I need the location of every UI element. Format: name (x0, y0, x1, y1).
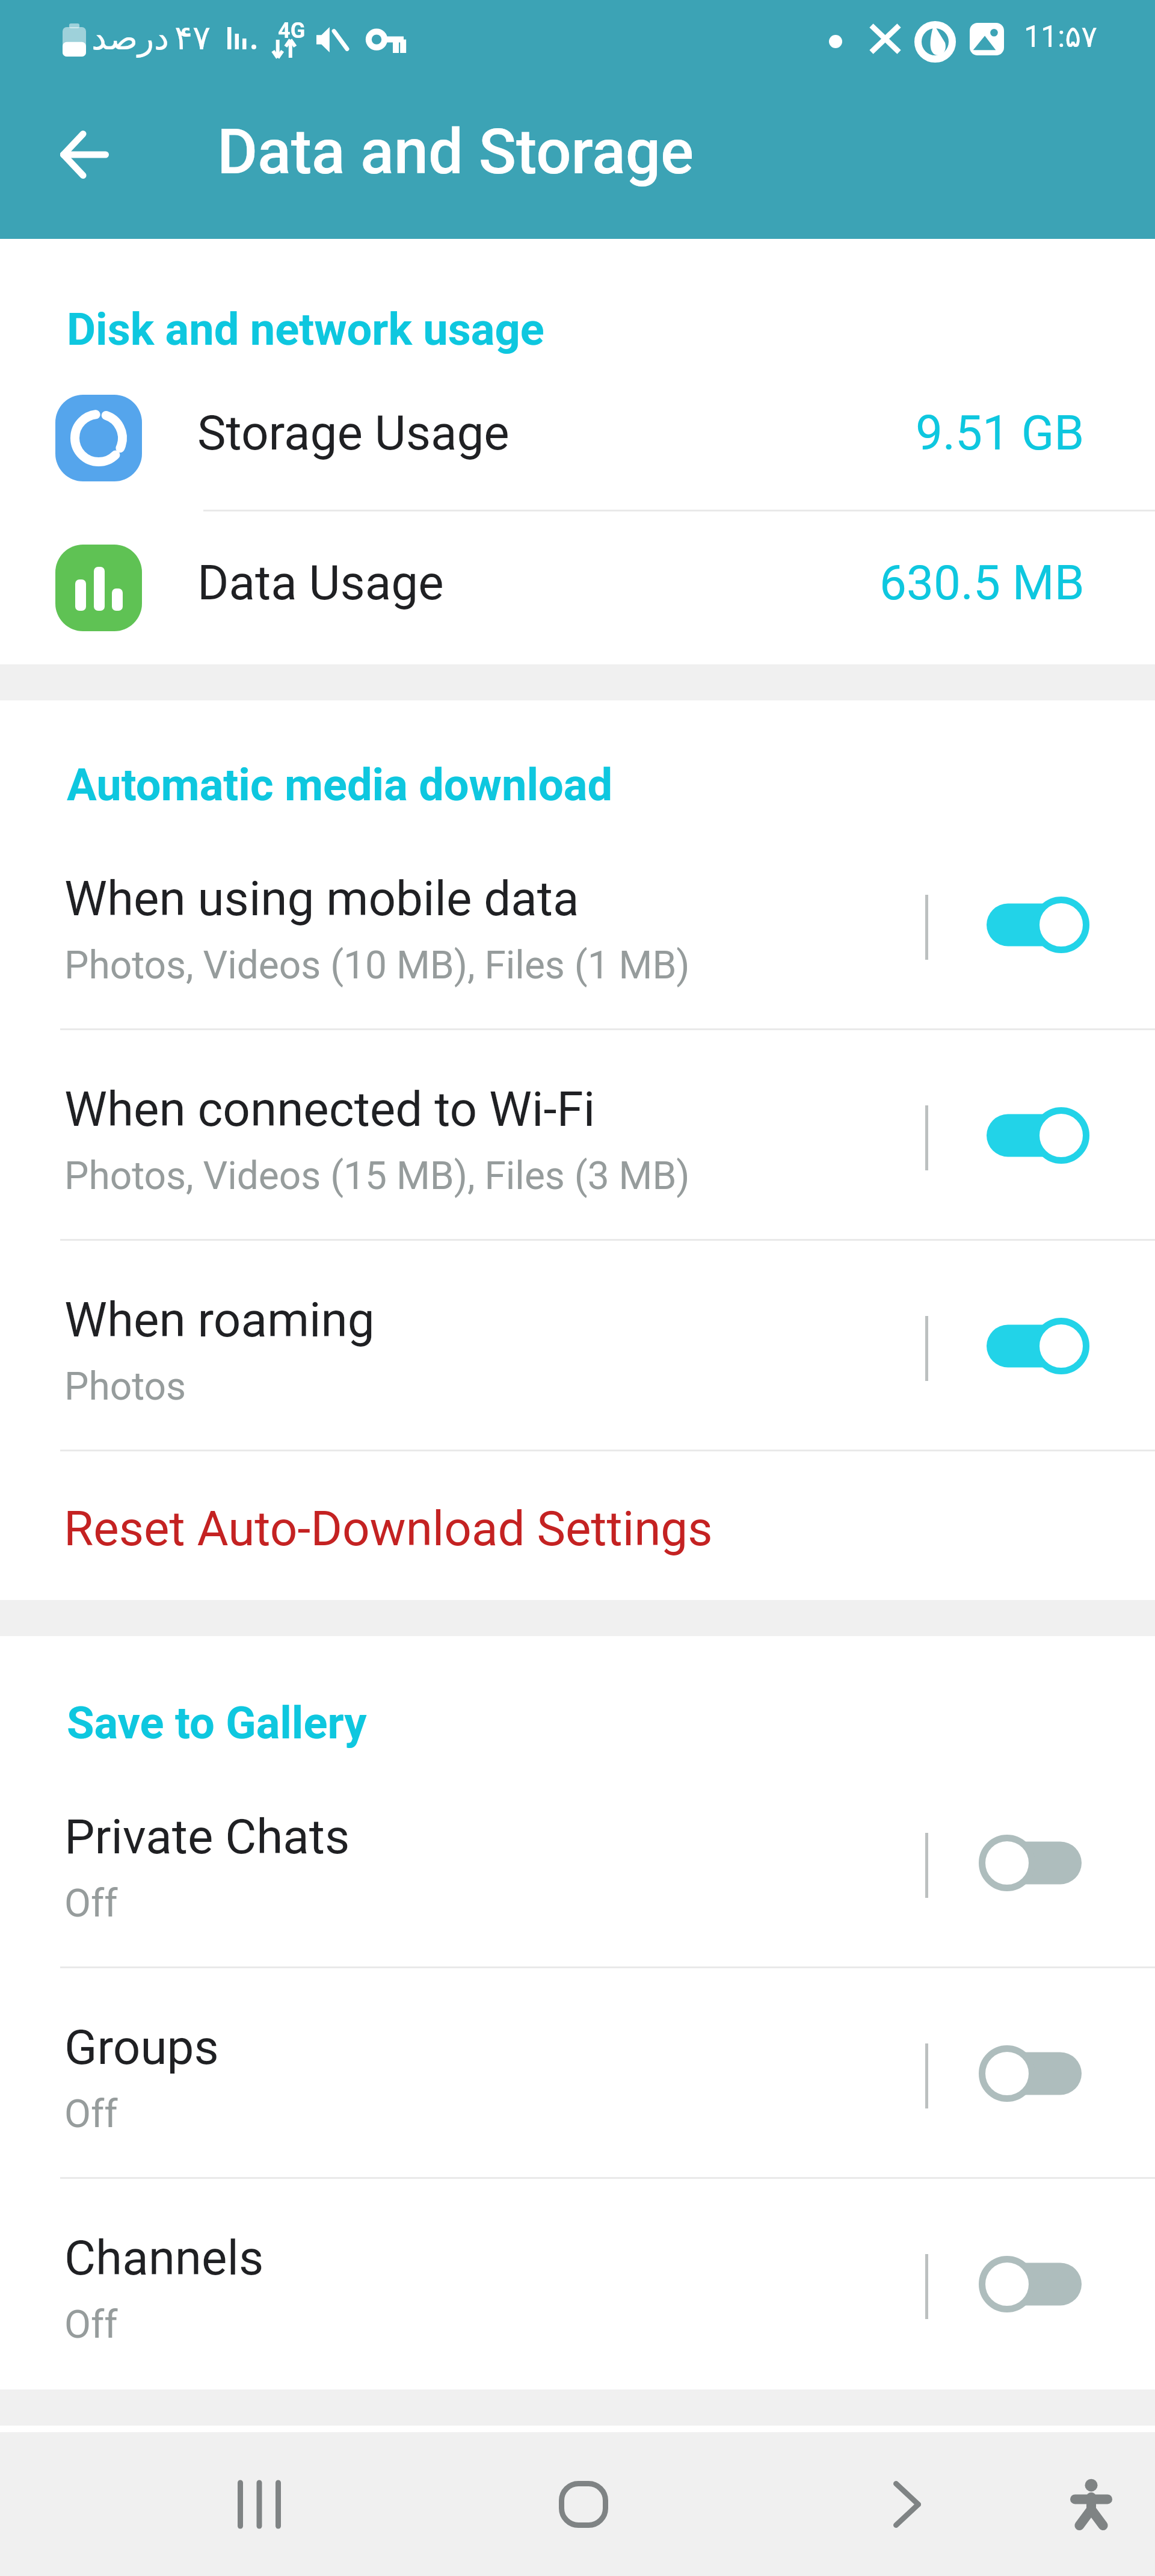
staticText: Off (64, 1881, 118, 1926)
staticText: Disk and network usage (67, 303, 544, 356)
staticText: 630.5 MB (879, 555, 1085, 611)
staticText: 9.51 GB (916, 405, 1085, 462)
staticText: When using mobile data (64, 871, 579, 927)
button[interactable]: Toggle on (928, 856, 1092, 994)
staticText: Storage Usage (197, 405, 510, 462)
button[interactable]: Recents (211, 2432, 307, 2576)
button[interactable]: Home (535, 2432, 632, 2576)
staticText: Off (64, 2302, 118, 2347)
button[interactable]: When connected to Wi-Fi (0, 1030, 1155, 1241)
button[interactable]: Reset Auto-Download Settings (0, 1451, 1155, 1600)
button[interactable]: When using mobile data (0, 820, 1155, 1030)
staticText: When connected to Wi-Fi (64, 1081, 596, 1138)
button[interactable]: When roaming (0, 1241, 1155, 1451)
button[interactable]: Channels (0, 2179, 1155, 2389)
staticText: ۴۷ (174, 18, 211, 57)
staticText: Save to Gallery (67, 1697, 367, 1749)
button[interactable]: Toggle off (928, 1794, 1092, 1932)
staticText: Reset Auto-Download Settings (64, 1501, 713, 1557)
staticText: When roaming (64, 1292, 375, 1348)
button[interactable]: Storage Usage (0, 364, 1155, 511)
staticText: Photos (64, 1364, 186, 1409)
button[interactable]: Back (859, 2432, 955, 2576)
staticText: 11:۵۷ (1024, 19, 1098, 55)
button[interactable]: Toggle on (928, 1066, 1092, 1205)
button[interactable]: Back (32, 102, 137, 207)
staticText: Automatic media download (67, 759, 613, 811)
button[interactable]: Accessibility (1043, 2432, 1139, 2576)
staticText: 4G (278, 18, 306, 43)
button[interactable]: Data Usage (0, 511, 1155, 664)
button[interactable]: Private Chats (0, 1758, 1155, 1968)
staticText: Channels (64, 2230, 264, 2287)
button[interactable]: Groups (0, 1968, 1155, 2179)
staticText: Photos, Videos (15 MB), Files (3 MB) (64, 1154, 690, 1199)
staticText: Groups (64, 2019, 219, 2076)
staticText: Photos, Videos (10 MB), Files (1 MB) (64, 943, 690, 988)
staticText: Data Usage (197, 555, 444, 611)
button[interactable]: Toggle off (928, 2215, 1092, 2353)
button[interactable]: Toggle on (928, 1277, 1092, 1415)
staticText: درصد (91, 18, 169, 57)
button[interactable]: Toggle off (928, 2004, 1092, 2143)
staticText: Off (64, 2092, 118, 2137)
staticText: Private Chats (64, 1809, 350, 1865)
staticText: Data and Storage (217, 116, 694, 188)
